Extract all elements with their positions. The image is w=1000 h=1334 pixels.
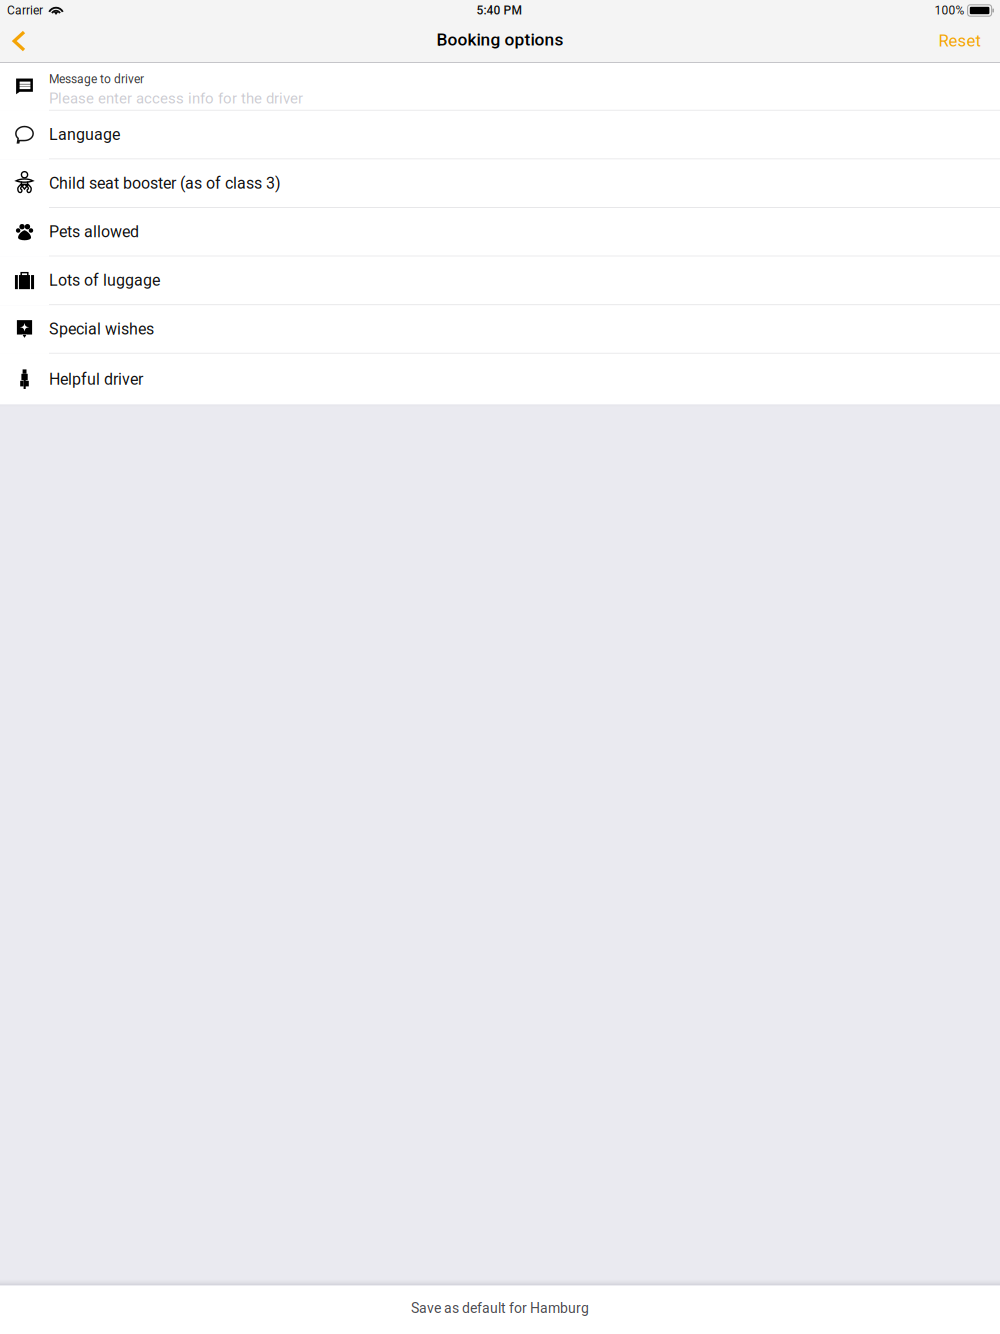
staticText: Helpful driver bbox=[49, 370, 143, 389]
button[interactable]: Message to driver bbox=[0, 63, 1000, 111]
staticText: Booking options bbox=[436, 29, 563, 50]
button[interactable]: Save as default for Hamburg bbox=[0, 1285, 1000, 1334]
button[interactable]: Language bbox=[0, 111, 1000, 159]
staticText: Please enter access info for the driver bbox=[49, 90, 303, 107]
button[interactable]: Back bbox=[0, 21, 40, 62]
button[interactable]: Reset bbox=[920, 21, 1000, 62]
staticText: Child seat booster (as of class 3) bbox=[49, 174, 281, 193]
staticText: Pets allowed bbox=[49, 222, 139, 241]
staticText: Message to driver bbox=[49, 72, 144, 86]
button[interactable]: Child seat booster (as of class 3) bbox=[0, 159, 1000, 208]
staticText: Carrier bbox=[7, 3, 43, 18]
staticText: 100% bbox=[935, 3, 965, 18]
button[interactable]: Lots of luggage bbox=[0, 257, 1000, 305]
button[interactable]: Special wishes bbox=[0, 305, 1000, 354]
staticText: Lots of luggage bbox=[49, 271, 160, 290]
staticText: Special wishes bbox=[49, 320, 154, 338]
staticText: Language bbox=[49, 125, 120, 144]
staticText: Save as default for Hamburg bbox=[411, 1300, 589, 1316]
staticText: 5:40 PM bbox=[477, 3, 522, 18]
button[interactable]: Helpful driver bbox=[0, 354, 1000, 405]
staticText: Reset bbox=[938, 31, 980, 50]
button[interactable]: Pets allowed bbox=[0, 208, 1000, 257]
